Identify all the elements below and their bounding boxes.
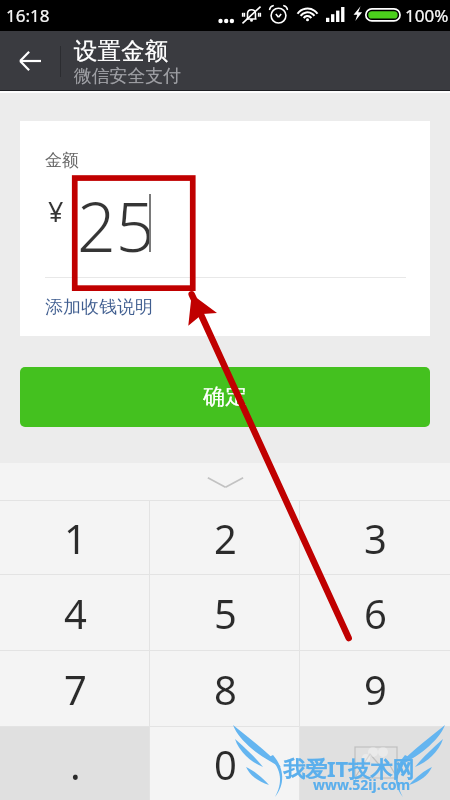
button[interactable]: Hide keyboard xyxy=(0,463,450,500)
staticText: www.52ij.com xyxy=(313,775,411,794)
button[interactable]: 确定 xyxy=(20,367,430,427)
staticText: 金额 xyxy=(45,150,79,171)
button[interactable]: 5 xyxy=(150,575,300,650)
staticText: 7 xyxy=(64,662,87,716)
staticText: 100% xyxy=(405,4,449,27)
staticText: 8 xyxy=(214,662,237,716)
staticText: 微信安全支付 xyxy=(74,65,181,87)
button[interactable]: 6 xyxy=(300,575,450,650)
staticText: 我爱IT技术网 xyxy=(283,753,415,783)
staticText: . xyxy=(70,737,81,791)
button[interactable]: Back xyxy=(0,31,60,90)
button[interactable] xyxy=(300,727,450,800)
staticText: 25 xyxy=(77,179,155,272)
button[interactable]: . xyxy=(0,727,150,800)
button[interactable]: 0 xyxy=(150,727,300,800)
staticText: 确定 xyxy=(203,383,247,411)
staticText: 设置金额 xyxy=(74,36,168,66)
staticText: 6 xyxy=(364,586,387,640)
staticText: 3 xyxy=(364,511,387,565)
button[interactable]: 7 xyxy=(0,651,150,726)
staticText: 16:18 xyxy=(6,4,50,27)
button[interactable]: 9 xyxy=(300,651,450,726)
button[interactable]: 8 xyxy=(150,651,300,726)
button[interactable]: 3 xyxy=(300,501,450,574)
button[interactable]: 添加收钱说明 xyxy=(45,296,153,319)
staticText: ¥ xyxy=(48,193,64,230)
staticText: 4 xyxy=(64,586,87,640)
button[interactable]: 2 xyxy=(150,501,300,574)
button[interactable]: 4 xyxy=(0,575,150,650)
staticText: 5 xyxy=(214,586,237,640)
button[interactable]: 1 xyxy=(0,501,150,574)
staticText: 添加收钱说明 xyxy=(45,296,153,319)
staticText: 0 xyxy=(214,737,237,791)
staticText: 1 xyxy=(64,511,87,565)
staticText: 2 xyxy=(214,511,237,565)
staticText: 9 xyxy=(364,662,387,716)
